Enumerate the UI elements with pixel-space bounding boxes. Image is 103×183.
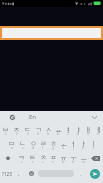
staticText: b	[62, 160, 64, 164]
button[interactable]: ㅎ	[48, 137, 58, 151]
button[interactable]: ㅡ	[78, 151, 88, 165]
staticText: x	[32, 160, 34, 164]
staticText: ㄴ	[19, 139, 26, 148]
staticText: ㅔ	[95, 125, 102, 134]
button[interactable]: Gboard settings	[8, 113, 17, 122]
staticText: ㅛ	[55, 125, 62, 134]
button[interactable]: ㅇ	[28, 137, 38, 151]
staticText: ㅋ	[18, 153, 25, 162]
button[interactable]: ?123	[0, 165, 14, 182]
staticText: ?123	[2, 171, 12, 177]
staticText: ㅇ	[30, 139, 37, 148]
button[interactable]: ㅣ	[88, 137, 98, 151]
button[interactable]: ㅌ	[27, 151, 38, 165]
staticText: 5	[47, 132, 49, 136]
button[interactable]: Send	[90, 169, 100, 179]
staticText: ㅣ	[90, 139, 97, 148]
staticText: k	[82, 146, 84, 150]
button[interactable]: ㅋ	[16, 151, 27, 165]
staticText: ㅅ	[45, 125, 52, 134]
staticText: ㅕ	[65, 125, 72, 134]
staticText: j	[73, 146, 74, 150]
button[interactable]: ㅗ	[58, 137, 68, 151]
button[interactable]: ㅐ	[83, 123, 93, 137]
staticText: ㄷ	[24, 125, 31, 134]
staticText: En	[29, 113, 37, 121]
staticText: 8	[77, 132, 79, 136]
button[interactable]: ㅅ	[43, 123, 53, 137]
button[interactable]: ㅠ	[58, 151, 68, 165]
staticText: ㄱ	[35, 125, 42, 134]
staticText: 7	[67, 132, 69, 136]
staticText: 3	[27, 132, 29, 136]
button[interactable]: En	[28, 112, 38, 122]
staticText: l	[93, 146, 94, 150]
staticText: ㅡ	[80, 153, 87, 162]
staticText: ㅏ	[80, 139, 87, 148]
staticText: ㅍ	[50, 153, 57, 162]
staticText: v	[52, 160, 54, 164]
staticText: ㅈ	[13, 125, 20, 134]
button[interactable]: ㄴ	[17, 137, 28, 151]
button[interactable]: ㅔ	[93, 123, 103, 137]
staticText: g	[52, 146, 54, 150]
staticText: z	[21, 160, 23, 164]
staticText: ㅜ	[70, 153, 77, 162]
button[interactable]: ㅊ	[38, 151, 48, 165]
button[interactable]: ㅏ	[78, 137, 88, 151]
button[interactable]: ㅁ	[6, 137, 17, 151]
staticText: ㅐ	[85, 125, 92, 134]
staticText: f	[42, 146, 44, 150]
staticText: ㅂ	[2, 125, 9, 134]
button[interactable]: Backspace	[88, 151, 103, 165]
button[interactable]: Shift	[0, 151, 16, 165]
staticText: 1	[5, 132, 7, 136]
button[interactable]: ㅜ	[68, 151, 78, 165]
staticText: ㅁ	[8, 139, 15, 148]
staticText: ㅌ	[29, 153, 36, 162]
button[interactable]: ㅑ	[73, 123, 83, 137]
staticText: 2	[16, 132, 18, 136]
staticText: 4	[37, 132, 39, 136]
staticText: n	[72, 160, 74, 164]
staticText: s	[22, 146, 24, 150]
button[interactable]: ㅓ	[68, 137, 78, 151]
button[interactable]: ㅍ	[48, 151, 58, 165]
staticText: ㅗ	[60, 139, 67, 148]
staticText: 6	[57, 132, 59, 136]
button[interactable]: ㄱ	[33, 123, 43, 137]
staticText: ㄹ	[40, 139, 47, 148]
button[interactable]: Emoji	[24, 165, 38, 182]
staticText: ㅑ	[75, 125, 82, 134]
staticText: ,	[18, 170, 20, 178]
button[interactable]: Comma	[14, 165, 24, 182]
staticText: c	[42, 160, 44, 164]
staticText: ㅊ	[40, 153, 47, 162]
staticText: ㅓ	[70, 139, 77, 148]
staticText: ㅎ	[50, 139, 57, 148]
staticText: 0	[97, 132, 99, 136]
button[interactable]: ㄷ	[22, 123, 33, 137]
button[interactable]: ㅛ	[53, 123, 63, 137]
button[interactable]: ㄹ	[38, 137, 48, 151]
button[interactable]: ㅈ	[11, 123, 22, 137]
button[interactable]: ㅂ	[0, 123, 11, 137]
staticText: d	[32, 146, 34, 150]
staticText: ㅠ	[60, 153, 67, 162]
staticText: m	[82, 160, 85, 164]
staticText: a	[11, 146, 13, 150]
staticText: .	[80, 170, 82, 178]
button[interactable]: Expand suggestions	[90, 113, 99, 122]
staticText: 9	[87, 132, 89, 136]
staticText: h	[62, 146, 64, 150]
button[interactable]: ㅕ	[63, 123, 73, 137]
